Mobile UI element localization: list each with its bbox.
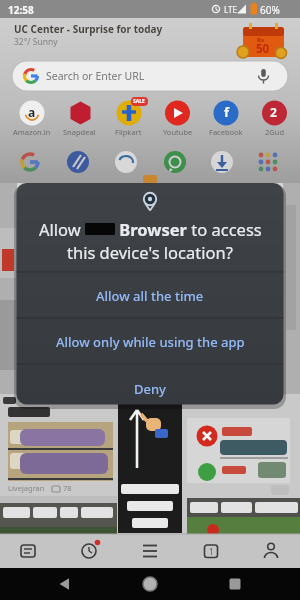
staticText: Youtube xyxy=(163,127,193,137)
staticText: LTE xyxy=(224,4,237,15)
staticText: Deny xyxy=(134,380,166,398)
staticText: this device's location? xyxy=(67,241,233,263)
staticText: Snapdeal xyxy=(63,127,96,137)
staticText: f xyxy=(224,103,230,121)
staticText: UC Center - Surprise for today xyxy=(14,22,163,36)
staticText: 1 xyxy=(209,546,214,557)
staticText: Facebook xyxy=(209,127,243,137)
staticText: SALE xyxy=(133,98,145,105)
staticText: to access xyxy=(187,218,262,240)
staticText: Flipkart xyxy=(115,127,142,137)
staticText: a xyxy=(28,104,36,120)
staticText: 32°/ Sunny xyxy=(14,36,58,48)
staticText: 78 xyxy=(63,483,72,493)
staticText: Allow xyxy=(39,218,85,240)
staticText: 12:58 xyxy=(8,3,34,17)
staticText: 2Gud xyxy=(265,127,284,137)
staticText: Browser xyxy=(115,218,187,240)
staticText: Search or Enter URL xyxy=(46,69,145,83)
staticText: 2 xyxy=(270,104,277,120)
staticText: Allow all the time xyxy=(96,287,204,305)
staticText: Amazon.in xyxy=(13,127,51,137)
staticText: Allow only while using the app xyxy=(56,333,245,351)
staticText: 50 xyxy=(256,41,270,57)
staticText: Rs xyxy=(257,36,264,44)
staticText: Livejagran xyxy=(8,483,45,493)
staticText: 60% xyxy=(260,3,280,17)
